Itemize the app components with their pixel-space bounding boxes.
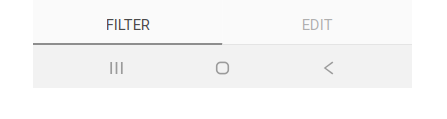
button[interactable]: Recent apps bbox=[96, 45, 136, 88]
button[interactable]: Home bbox=[202, 45, 242, 88]
staticText: EDIT bbox=[302, 16, 333, 34]
staticText: FILTER bbox=[106, 16, 150, 34]
button[interactable]: EDIT bbox=[222, 0, 412, 45]
button[interactable]: FILTER bbox=[33, 0, 222, 45]
button[interactable]: Back bbox=[308, 45, 348, 88]
